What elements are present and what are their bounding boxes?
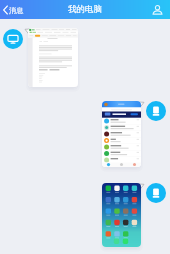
button[interactable]: My Computer [3, 29, 23, 49]
button[interactable]: My Phone [146, 183, 166, 203]
button[interactable]: Contacts [148, 0, 167, 19]
button[interactable]: My Phone [146, 101, 166, 121]
button[interactable]: Home screen screenshot [102, 183, 141, 247]
staticText: 我的电脑 [0, 4, 170, 15]
button[interactable]: Document screenshot [28, 28, 78, 87]
button[interactable]: 消息 [0, 2, 28, 18]
staticText: 消息 [9, 6, 24, 15]
button[interactable]: Chat list screenshot [102, 101, 141, 167]
